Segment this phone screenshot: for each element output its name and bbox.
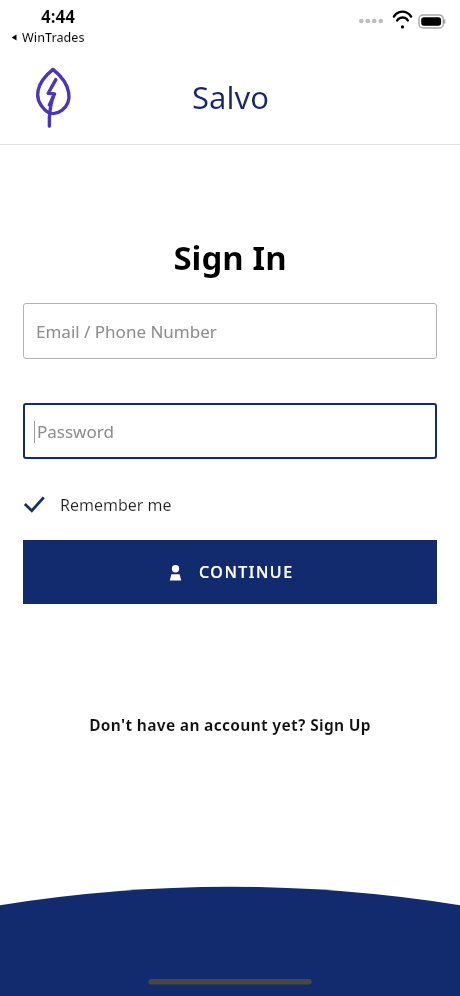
staticText: CONTINUE <box>199 561 294 583</box>
button[interactable]: Don't have an account yet? Sign Up <box>0 707 460 741</box>
staticText: Sign In <box>0 235 460 280</box>
staticText: 4:44 <box>41 5 75 28</box>
staticText: WinTrades <box>22 29 85 46</box>
button[interactable]: Password <box>23 403 437 459</box>
other: Salvo logo <box>33 66 73 128</box>
button[interactable]: Remember me <box>23 486 172 524</box>
staticText: Salvo <box>192 76 269 118</box>
button[interactable]: CONTINUE <box>23 540 437 604</box>
staticText: Don't have an account yet? Sign Up <box>89 714 371 735</box>
button[interactable]: Email / Phone Number <box>23 303 437 359</box>
staticText: Email / Phone Number <box>36 320 217 343</box>
staticText: Remember me <box>60 494 172 516</box>
staticText: Password <box>37 420 114 443</box>
